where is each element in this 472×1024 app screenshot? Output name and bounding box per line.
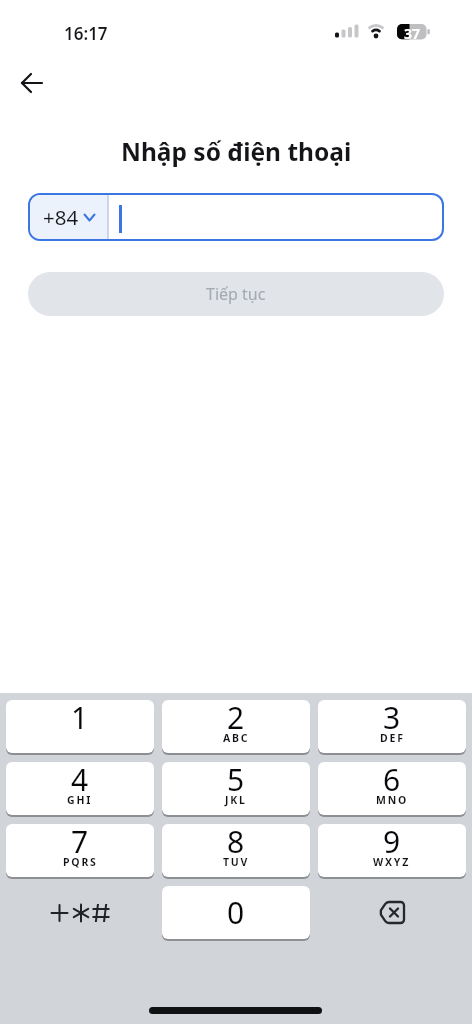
- staticText: DEF: [380, 731, 405, 745]
- staticText: 6: [383, 759, 401, 800]
- staticText: MNO: [376, 793, 409, 807]
- staticText: +84: [43, 203, 79, 231]
- staticText: Tiếp tục: [206, 283, 266, 305]
- button[interactable]: 4: [6, 762, 154, 815]
- staticText: PQRS: [63, 855, 98, 869]
- staticText: 3: [383, 697, 401, 738]
- button[interactable]: 6: [318, 762, 466, 815]
- button[interactable]: 5: [162, 762, 310, 815]
- staticText: GHI: [67, 793, 93, 807]
- staticText: WXYZ: [373, 855, 411, 869]
- staticText: 37: [404, 24, 421, 40]
- staticText: 16:17: [64, 22, 108, 45]
- button[interactable]: 3: [318, 700, 466, 753]
- button[interactable]: +84: [28, 193, 444, 241]
- staticText: 4: [71, 759, 89, 800]
- button[interactable]: [318, 886, 466, 939]
- staticText: JKL: [225, 793, 247, 807]
- button[interactable]: 2: [162, 700, 310, 753]
- button[interactable]: [12, 64, 52, 102]
- button[interactable]: 1: [6, 700, 154, 753]
- button[interactable]: 8: [162, 824, 310, 877]
- staticText: 5: [227, 759, 245, 800]
- button[interactable]: +84: [30, 195, 107, 239]
- button[interactable]: 9: [318, 824, 466, 877]
- staticText: ABC: [223, 731, 250, 745]
- staticText: Nhập số điện thoại: [121, 135, 352, 168]
- button[interactable]: 7: [6, 824, 154, 877]
- staticText: 9: [383, 821, 401, 862]
- staticText: 1: [71, 697, 89, 738]
- staticText: TUV: [223, 855, 250, 869]
- button[interactable]: 0: [162, 886, 310, 939]
- staticText: 7: [71, 821, 89, 862]
- staticText: 8: [227, 821, 245, 862]
- button[interactable]: Tiếp tục: [28, 272, 444, 316]
- staticText: 0: [227, 892, 245, 933]
- staticText: 2: [227, 697, 245, 738]
- button[interactable]: [6, 886, 154, 939]
